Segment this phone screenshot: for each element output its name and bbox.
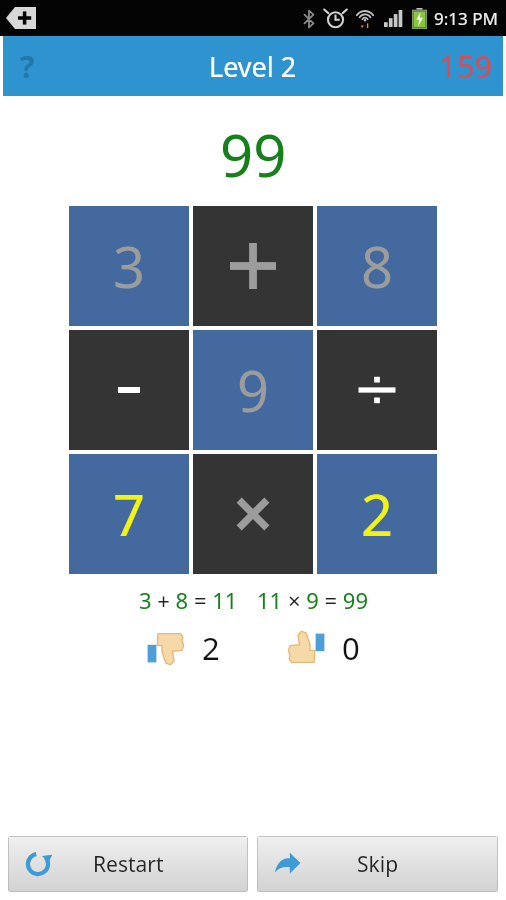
staticText: 2	[361, 476, 394, 552]
button[interactable]: Help	[3, 42, 51, 90]
button[interactable]: 3	[69, 206, 189, 326]
button[interactable]: Plus	[193, 206, 313, 326]
staticText: ?	[20, 46, 35, 87]
staticText: 3 + 8 = 11	[139, 585, 238, 615]
staticText: 99	[220, 115, 287, 194]
staticText: 9	[237, 352, 270, 428]
staticText: 8	[361, 228, 394, 304]
button[interactable]: Restart	[8, 836, 248, 892]
staticText: 159	[439, 45, 493, 87]
staticText: 7	[113, 476, 146, 552]
staticText: 11 × 9 = 99	[257, 585, 368, 615]
button[interactable]: Minus	[69, 330, 189, 450]
staticText: 9:13 PM	[434, 7, 498, 30]
button[interactable]: 9	[193, 330, 313, 450]
staticText: 0	[342, 627, 360, 669]
button[interactable]: 2	[317, 454, 437, 574]
button[interactable]: 7	[69, 454, 189, 574]
staticText: 3	[113, 228, 146, 304]
button[interactable]: 8	[317, 206, 437, 326]
staticText: 2	[202, 627, 220, 669]
button[interactable]: Skip	[257, 836, 498, 892]
staticText: Skip	[357, 850, 399, 879]
staticText: Level 2	[209, 48, 297, 85]
staticText: Restart	[93, 850, 164, 879]
button[interactable]: Multiply	[193, 454, 313, 574]
button[interactable]: Divide	[317, 330, 437, 450]
